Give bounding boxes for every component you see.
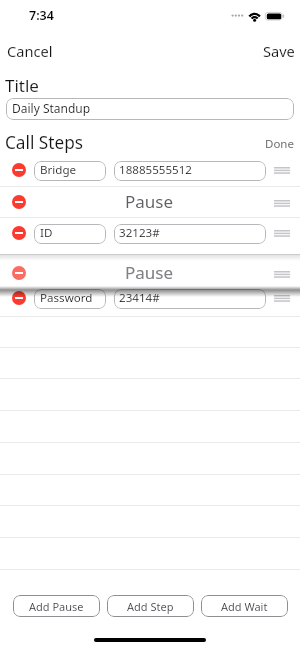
staticText: Done bbox=[265, 136, 294, 152]
button[interactable]: Bridge bbox=[34, 161, 106, 181]
button[interactable]: Remove step bbox=[12, 195, 26, 209]
staticText: Pause bbox=[125, 261, 174, 284]
button[interactable]: Reorder bbox=[272, 263, 292, 285]
staticText: Password bbox=[40, 290, 93, 306]
button[interactable]: Add Pause bbox=[13, 595, 100, 617]
button[interactable]: Remove step bbox=[12, 226, 26, 240]
button[interactable]: 32123# bbox=[114, 224, 266, 244]
staticText: 7:34 bbox=[29, 7, 54, 24]
button[interactable]: Done bbox=[263, 134, 296, 154]
button[interactable]: Reorder bbox=[272, 222, 292, 244]
staticText: Pause bbox=[125, 190, 174, 213]
button[interactable]: Add Wait bbox=[201, 595, 288, 617]
button[interactable]: Reorder bbox=[272, 287, 292, 309]
staticText: Call Steps bbox=[5, 131, 83, 154]
staticText: 23414# bbox=[119, 290, 160, 306]
staticText: Daily Standup bbox=[12, 100, 91, 116]
button[interactable]: Remove step bbox=[12, 266, 26, 280]
button[interactable]: Cancel bbox=[3, 37, 57, 65]
button[interactable]: Remove step bbox=[12, 291, 26, 305]
staticText: Add Wait bbox=[221, 599, 268, 614]
staticText: Bridge bbox=[40, 162, 77, 178]
button[interactable]: Reorder bbox=[272, 159, 292, 181]
staticText: 32123# bbox=[119, 225, 160, 241]
button[interactable]: Add Step bbox=[107, 595, 194, 617]
staticText: ID bbox=[40, 225, 53, 241]
staticText: Title bbox=[5, 74, 39, 97]
button[interactable]: Daily Standup bbox=[6, 98, 294, 120]
staticText: Add Pause bbox=[29, 599, 84, 614]
button[interactable]: Pause bbox=[0, 188, 299, 214]
button[interactable]: Pause bbox=[0, 259, 299, 285]
button[interactable]: Save bbox=[259, 37, 299, 65]
staticText: Cancel bbox=[7, 41, 53, 61]
staticText: Save bbox=[263, 41, 295, 61]
button[interactable]: 23414# bbox=[114, 289, 266, 309]
button[interactable]: Password bbox=[34, 289, 106, 309]
button[interactable]: ID bbox=[34, 224, 106, 244]
button[interactable]: Reorder bbox=[272, 192, 292, 214]
button[interactable]: Remove step bbox=[12, 163, 26, 177]
button[interactable]: 18885555512 bbox=[114, 161, 266, 181]
staticText: 18885555512 bbox=[119, 162, 192, 178]
staticText: Add Step bbox=[127, 599, 174, 614]
